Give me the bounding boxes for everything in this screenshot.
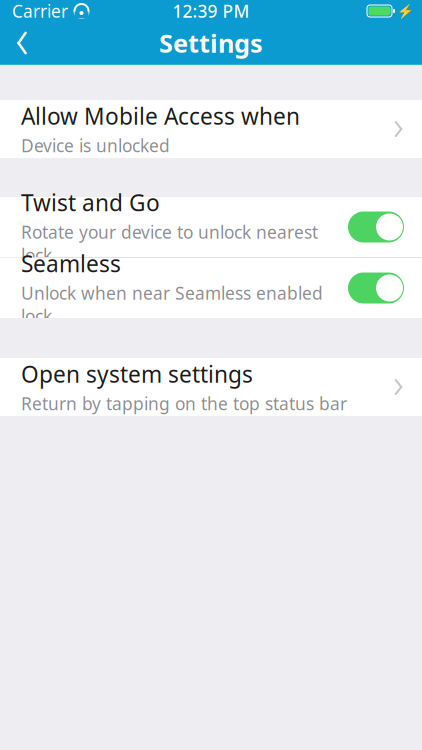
staticText: Return by tapping on the top status bar [21, 392, 347, 415]
staticText: Unlock when near Seamless enabled lock [21, 281, 323, 327]
staticText: Allow Mobile Access when [21, 101, 300, 131]
staticText: 12:39 PM [172, 0, 249, 22]
staticText: Seamless [21, 248, 121, 278]
staticText: Device is unlocked [21, 134, 170, 157]
button[interactable]: Allow Mobile Access when [0, 100, 422, 158]
staticText: Settings [159, 26, 263, 60]
staticText: Carrier [12, 0, 68, 22]
staticText: ⚡ [397, 3, 414, 19]
button[interactable]: Seamless [348, 272, 404, 303]
staticText: Rotate your device to unlock nearest loc… [21, 220, 318, 266]
button[interactable]: Open system settings [0, 358, 422, 416]
button[interactable]: Twist and Go [348, 211, 404, 242]
staticText: Open system settings [21, 359, 253, 389]
staticText: Twist and Go [21, 187, 160, 217]
button[interactable]: Back [0, 22, 44, 64]
